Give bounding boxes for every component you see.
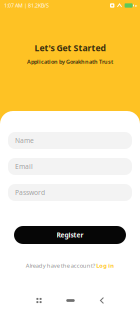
- button[interactable]: Email: [8, 158, 132, 175]
- button[interactable]: Register: [14, 226, 126, 244]
- button[interactable]: Already have the account?: [26, 261, 114, 269]
- button[interactable]: Home: [55, 292, 86, 309]
- staticText: Already have the account?: [26, 261, 95, 269]
- staticText: Email: [15, 162, 33, 171]
- staticText: ▸: [135, 3, 137, 8]
- staticText: Password: [15, 188, 45, 197]
- staticText: Register: [56, 230, 83, 240]
- button[interactable]: Password: [8, 184, 132, 201]
- button[interactable]: Back: [86, 292, 118, 309]
- button[interactable]: Recents: [23, 292, 55, 309]
- staticText: 1:07 AM | 81.2KB/S: [4, 2, 49, 9]
- staticText: Let's Get Started: [34, 42, 105, 54]
- staticText: Log in: [96, 261, 114, 269]
- staticText: Name: [15, 136, 34, 145]
- staticText: Application by Gorakhnath Trust: [27, 58, 113, 65]
- button[interactable]: Name: [8, 132, 132, 149]
